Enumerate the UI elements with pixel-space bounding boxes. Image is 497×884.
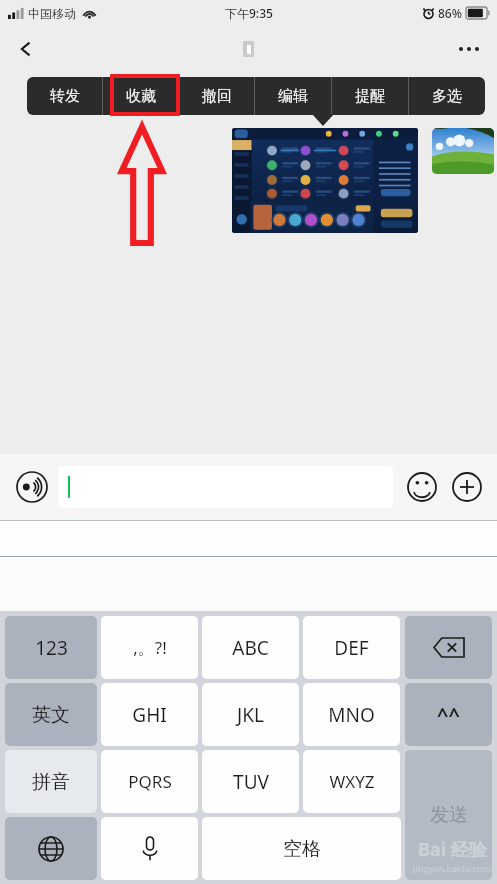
- button[interactable]: MNO: [303, 683, 400, 746]
- staticText: ^^: [437, 701, 460, 728]
- button[interactable]: Emoticons: [405, 683, 492, 746]
- staticText: 拼音: [32, 770, 70, 794]
- button[interactable]: JKL: [202, 683, 299, 746]
- staticText: GHI: [132, 702, 167, 728]
- staticText: Bai 经验: [418, 837, 487, 862]
- staticText: DEF: [334, 635, 369, 661]
- button[interactable]: More: [447, 27, 491, 71]
- button[interactable]: Back: [6, 29, 46, 69]
- button[interactable]: 英文: [5, 683, 97, 746]
- staticText: 编辑: [278, 87, 308, 106]
- button[interactable]: DEF: [303, 616, 400, 679]
- button[interactable]: Voice input: [9, 464, 55, 510]
- staticText: 撤回: [202, 87, 232, 106]
- staticText: 空格: [283, 837, 321, 861]
- button[interactable]: 提醒: [332, 77, 408, 115]
- button[interactable]: 收藏: [103, 77, 178, 115]
- staticText: 英文: [32, 703, 70, 727]
- staticText: 86%: [438, 5, 462, 21]
- button[interactable]: 拼音: [5, 750, 97, 813]
- button[interactable]: GHI: [101, 683, 198, 746]
- button[interactable]: ,。?!: [101, 616, 198, 679]
- staticText: jingyan.baidu.com: [413, 862, 491, 874]
- button[interactable]: WXYZ: [303, 750, 400, 813]
- button[interactable]: Voice: [101, 817, 198, 880]
- button[interactable]: 空格: [202, 817, 401, 880]
- button[interactable]: 123: [5, 616, 97, 679]
- button[interactable]: ABC: [202, 616, 299, 679]
- staticText: 中国移动: [28, 6, 76, 21]
- staticText: 发送: [430, 803, 468, 827]
- staticText: 转发: [50, 87, 80, 106]
- button[interactable]: Delete: [405, 616, 492, 679]
- button[interactable]: TUV: [202, 750, 299, 813]
- staticText: ABC: [232, 635, 269, 661]
- button[interactable]: Emoji: [401, 466, 443, 508]
- staticText: PQRS: [128, 770, 172, 793]
- button[interactable]: [58, 466, 393, 508]
- button[interactable]: More functions: [446, 466, 488, 508]
- button[interactable]: 转发: [27, 77, 102, 115]
- staticText: 123: [35, 635, 68, 661]
- button[interactable]: 编辑: [255, 77, 331, 115]
- staticText: 下午9:35: [225, 5, 273, 21]
- staticText: WXYZ: [329, 770, 375, 793]
- button[interactable]: Switch keyboard: [5, 817, 97, 880]
- staticText: ,。?!: [133, 636, 167, 659]
- button[interactable]: 多选: [409, 77, 485, 115]
- staticText: JKL: [237, 702, 264, 728]
- button[interactable]: PQRS: [101, 750, 198, 813]
- staticText: 收藏: [126, 87, 156, 106]
- button[interactable]: 发送: [405, 750, 492, 880]
- staticText: 多选: [432, 87, 462, 106]
- staticText: MNO: [328, 702, 375, 728]
- staticText: TUV: [233, 769, 269, 795]
- staticText: 提醒: [355, 87, 385, 106]
- button[interactable]: 撤回: [179, 77, 254, 115]
